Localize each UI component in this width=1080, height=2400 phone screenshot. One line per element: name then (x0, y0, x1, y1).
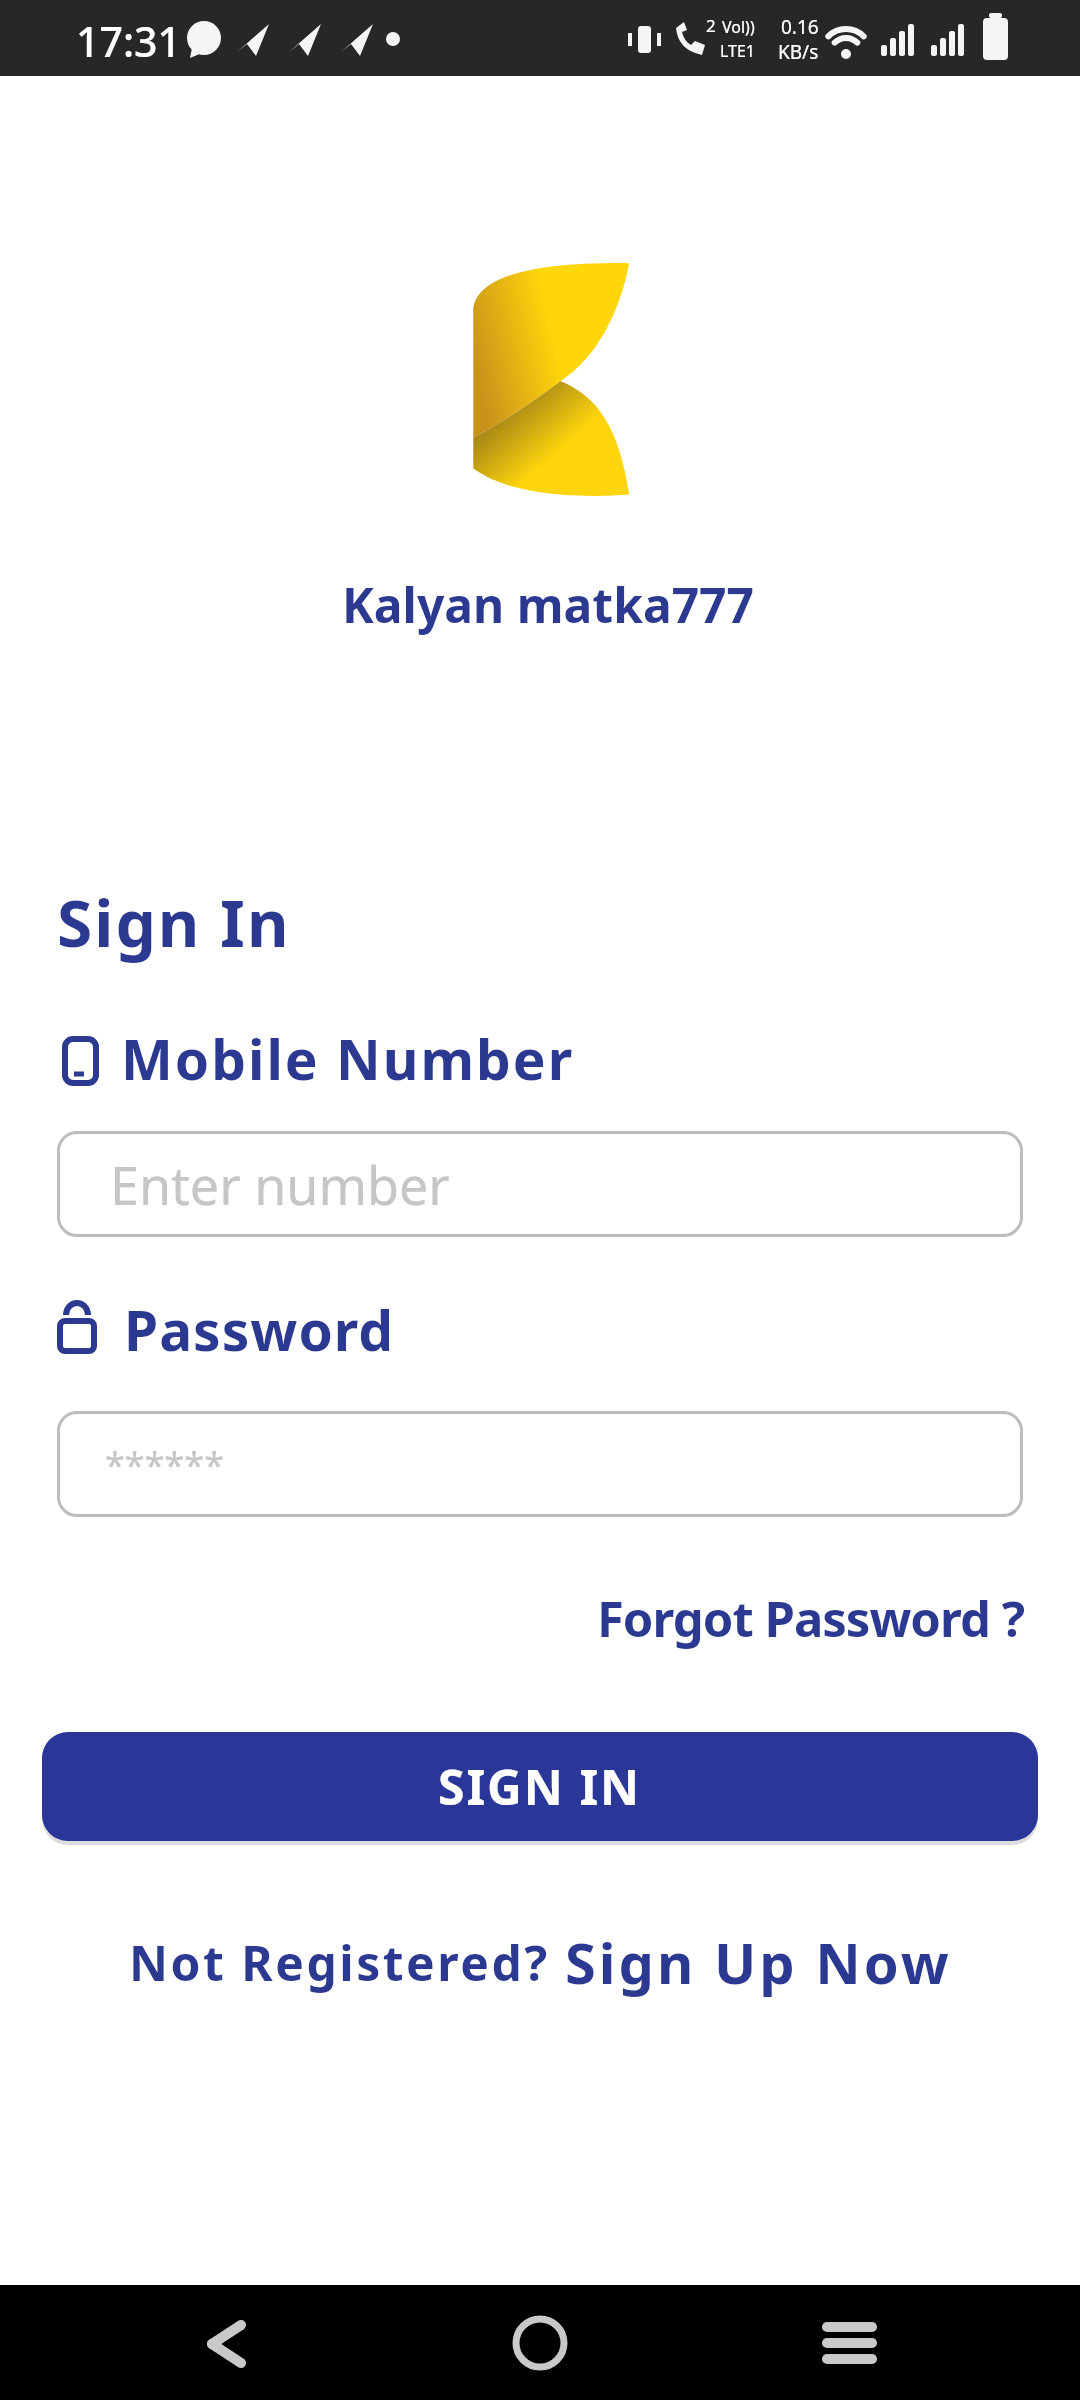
staticText: Kalyan matka777 (8, 572, 1080, 637)
button[interactable] (502, 2305, 578, 2381)
button[interactable]: SIGN IN (42, 1732, 1038, 1841)
staticText: Not Registered? (129, 1930, 565, 1995)
staticText: 2 (706, 14, 716, 37)
staticText: 17:31 (76, 13, 181, 69)
button[interactable]: Not Registered? (0, 1924, 1080, 2000)
staticText: Sign Up Now (565, 1924, 952, 2000)
button[interactable] (812, 2305, 888, 2381)
staticText: SIGN IN (438, 1754, 642, 1819)
button[interactable]: ****** (57, 1411, 1023, 1517)
button[interactable]: Enter number (57, 1131, 1023, 1237)
staticText: Password (124, 1292, 395, 1367)
staticText: Enter number (110, 1149, 450, 1220)
staticText: KB/s (778, 39, 819, 65)
staticText: ****** (105, 1440, 225, 1489)
staticText: 0.16 (781, 14, 819, 40)
staticText: Vol)) (722, 16, 755, 38)
staticText: LTE1 (720, 40, 756, 62)
staticText: Mobile Number (121, 1021, 575, 1096)
staticText: Sign In (57, 879, 291, 966)
button[interactable] (190, 2305, 266, 2381)
button[interactable]: Forgot Password ? (0, 1585, 1024, 1652)
